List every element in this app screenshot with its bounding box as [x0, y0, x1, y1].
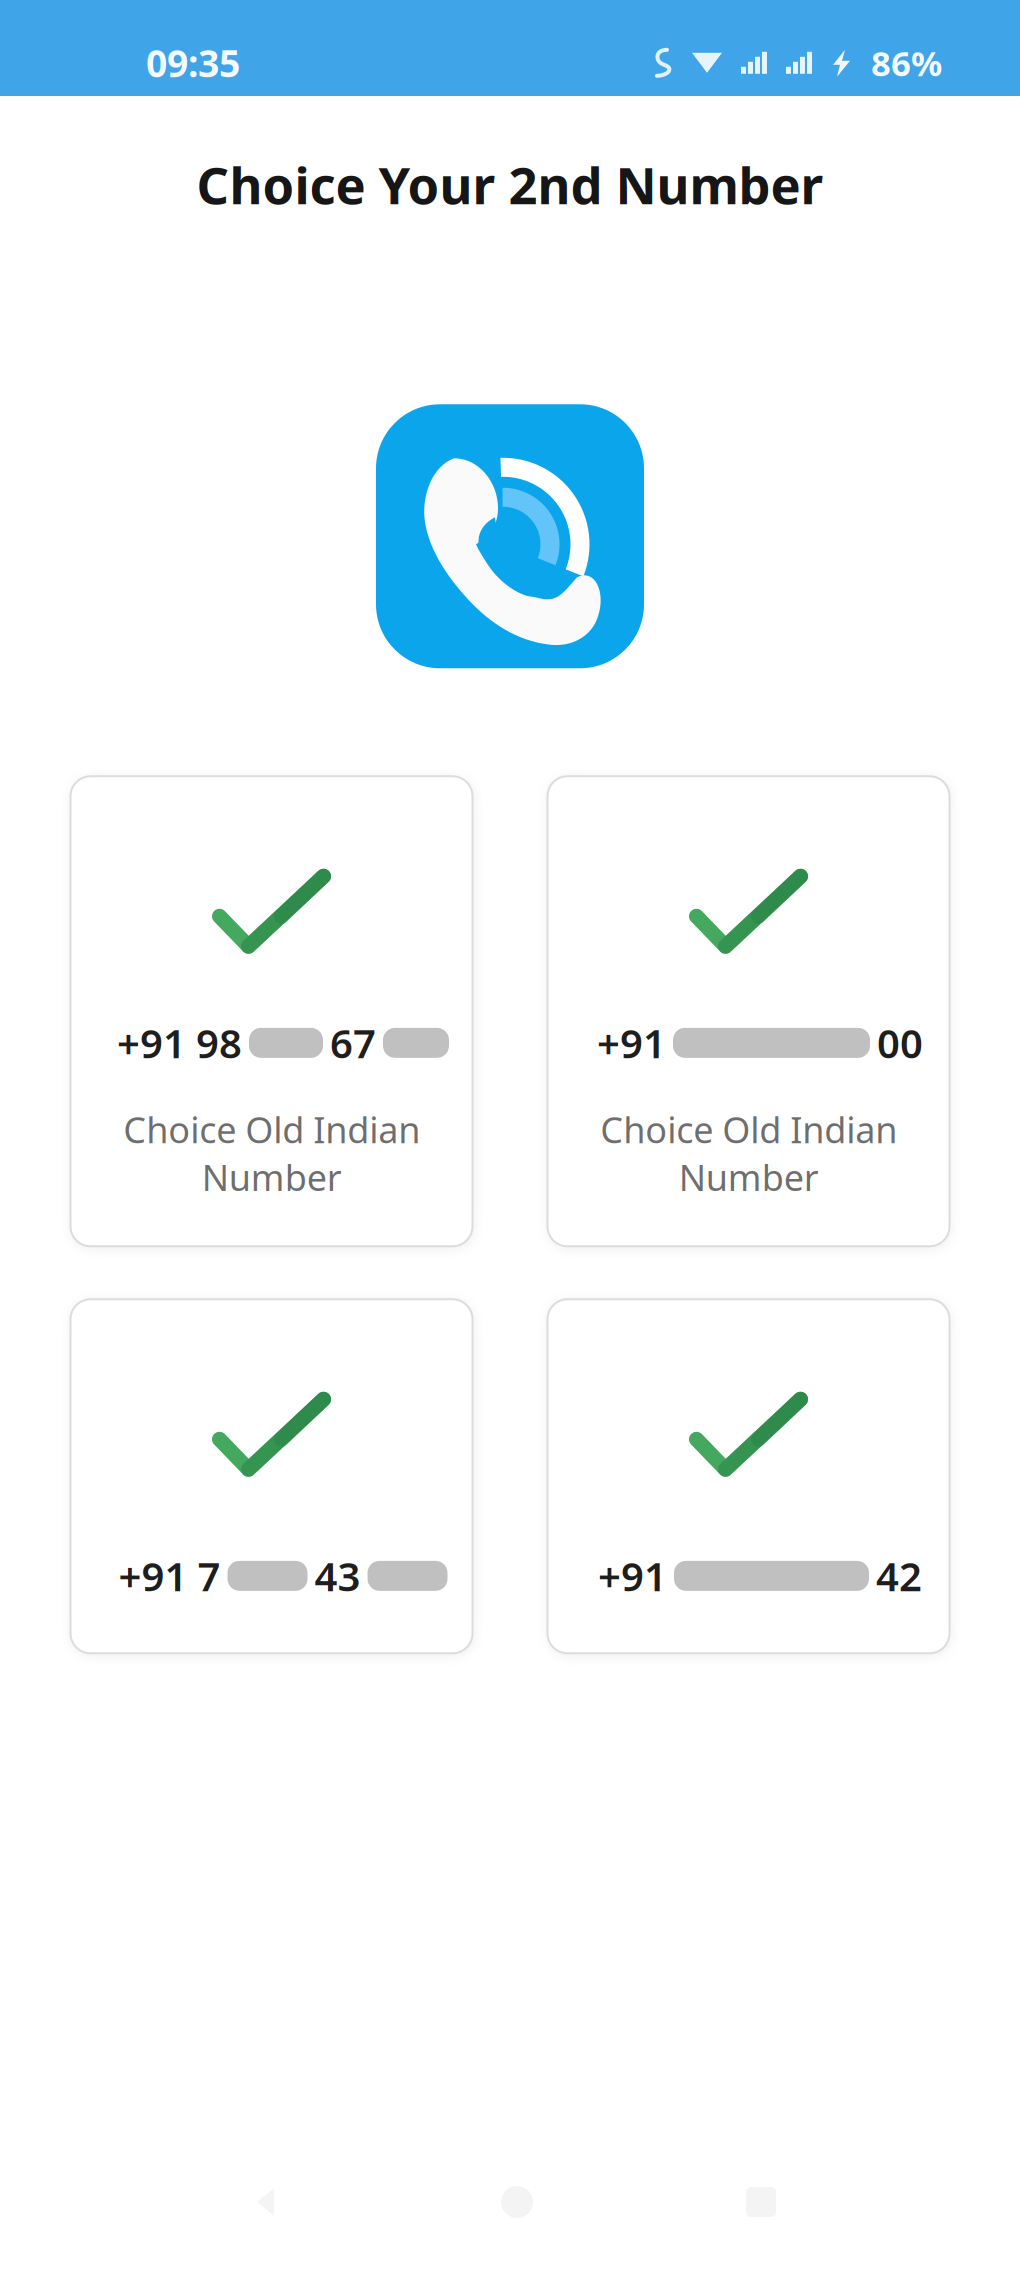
staticText: 67 [330, 1016, 376, 1069]
button[interactable]: Back [252, 2185, 288, 2219]
staticText: 09:35 [146, 38, 240, 88]
button[interactable]: +91 7 [70, 1299, 472, 1653]
staticText: +91 [598, 1549, 667, 1602]
staticText: 42 [876, 1549, 922, 1602]
button[interactable]: +91 [547, 1299, 949, 1653]
staticText: +91 [597, 1016, 666, 1069]
staticText: 43 [314, 1549, 360, 1602]
button[interactable]: +91 98 [70, 776, 472, 1246]
staticText: 86% [871, 40, 942, 86]
button[interactable]: Home [501, 2186, 533, 2218]
staticText: 00 [877, 1016, 923, 1069]
staticText: Choice Your 2nd Number [196, 151, 823, 218]
staticText: Choice Old Indian Number [600, 1105, 897, 1201]
staticText: +91 98 [117, 1016, 242, 1069]
button[interactable]: +91 [547, 776, 949, 1246]
staticText: Choice Old Indian Number [123, 1105, 420, 1201]
staticText: +91 7 [118, 1549, 220, 1602]
